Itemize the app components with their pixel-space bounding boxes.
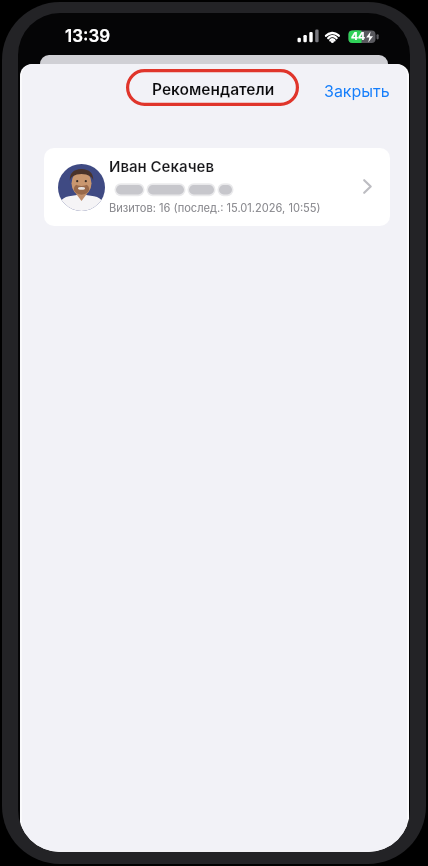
staticText: Визитов: 16 (послед.: 15.01.2026, 10:55)	[109, 201, 321, 214]
button[interactable]: Закрыть	[302, 77, 390, 104]
staticText: 44	[351, 30, 366, 43]
staticText: Закрыть	[324, 81, 390, 100]
staticText: Иван Секачев	[109, 157, 214, 175]
button[interactable]: Иван Секачев	[44, 148, 390, 226]
staticText: Рекомендатели	[152, 80, 275, 99]
staticText: 13:39	[65, 26, 111, 47]
